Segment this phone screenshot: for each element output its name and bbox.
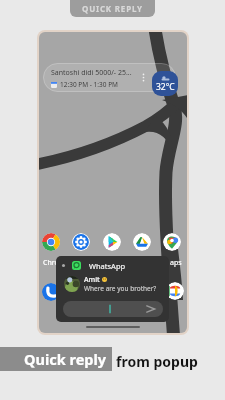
staticText: Chro xyxy=(43,258,59,268)
button[interactable]: Settings xyxy=(72,233,90,251)
staticText: Quick reply xyxy=(24,349,107,369)
staticText: 12:30 PM - 1:30 PM xyxy=(60,80,119,89)
button[interactable]: QUICK REPLY xyxy=(70,0,155,17)
staticText: Santoshi didi 5000/- 25... xyxy=(51,68,132,78)
staticText: from popup xyxy=(116,352,198,371)
staticText: aps xyxy=(170,258,182,268)
button[interactable]: Weather 32 degrees xyxy=(152,71,178,96)
button[interactable]: Play Store xyxy=(103,233,121,251)
staticText: QUICK REPLY xyxy=(82,3,143,14)
button[interactable]: Chrome xyxy=(42,233,60,251)
button[interactable]: Sender avatar xyxy=(64,276,80,292)
button[interactable]: WhatsApp xyxy=(56,256,169,275)
button[interactable]: More options xyxy=(138,72,149,83)
staticText: WhatsApp xyxy=(89,261,126,271)
staticText: 32°C xyxy=(156,81,175,93)
button[interactable]: Phone xyxy=(42,283,60,301)
staticText: Amit xyxy=(84,275,100,284)
button[interactable]: Santoshi didi 5000/- 25... xyxy=(43,63,176,92)
staticText: Where are you brother? xyxy=(84,284,157,293)
button[interactable]: Maps xyxy=(163,233,181,251)
button[interactable]: Reply message xyxy=(63,301,163,317)
button[interactable]: Drive xyxy=(133,233,151,251)
button[interactable]: Photos xyxy=(166,282,184,300)
